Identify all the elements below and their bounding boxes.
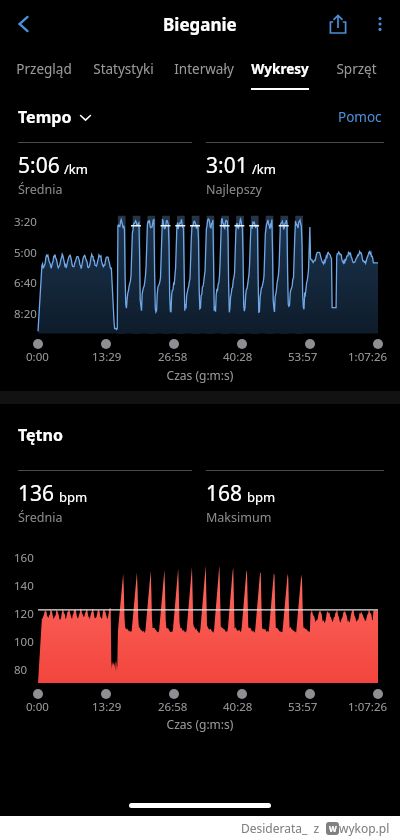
staticText: Tętno: [18, 424, 63, 446]
staticText: Desiderata_ z: [241, 820, 326, 836]
staticText: Przegląd: [16, 60, 72, 78]
staticText: /km: [64, 160, 88, 178]
staticText: 140: [14, 578, 34, 594]
staticText: 1:07:26: [348, 349, 388, 364]
staticText: Sprzęt: [336, 60, 377, 78]
staticText: Czas (g:m:s): [0, 716, 400, 732]
staticText: 6:40: [14, 275, 37, 291]
staticText: 40:28: [223, 699, 253, 714]
button[interactable]: Share: [316, 2, 360, 46]
staticText: 40:28: [223, 349, 253, 364]
button[interactable]: Tempo: [18, 106, 92, 128]
staticText: 160: [14, 550, 34, 566]
staticText: 136: [18, 479, 55, 508]
staticText: wykop.pl: [339, 820, 390, 836]
staticText: 5:00: [14, 245, 37, 261]
button[interactable]: Wykresy: [242, 48, 318, 90]
staticText: W: [329, 823, 337, 834]
staticText: bpm: [59, 488, 88, 506]
staticText: 168: [206, 479, 243, 508]
staticText: Średnia: [18, 181, 63, 198]
staticText: 26:58: [158, 699, 188, 714]
staticText: Maksimum: [206, 509, 272, 526]
staticText: 120: [14, 606, 34, 622]
staticText: Tempo: [18, 106, 72, 128]
button[interactable]: Back: [0, 0, 48, 48]
staticText: 5:06: [18, 151, 60, 180]
staticText: 13:29: [92, 699, 122, 714]
button[interactable]: Tętno: [18, 424, 63, 446]
staticText: Czas (g:m:s): [0, 367, 400, 383]
staticText: 13:29: [92, 349, 122, 364]
staticText: Najlepszy: [206, 181, 262, 198]
staticText: 0:00: [26, 349, 49, 364]
staticText: 0:00: [26, 699, 49, 714]
staticText: bpm: [247, 488, 276, 506]
staticText: 53:57: [288, 349, 318, 364]
staticText: Wykresy: [251, 60, 309, 78]
button[interactable]: Sprzęt: [318, 48, 394, 88]
staticText: Średnia: [18, 509, 63, 526]
button[interactable]: Przegląd: [6, 48, 81, 88]
staticText: Interwały: [174, 60, 234, 78]
button[interactable]: Interwały: [166, 48, 242, 88]
staticText: 80: [14, 662, 28, 678]
staticText: 100: [14, 634, 34, 650]
staticText: /km: [252, 160, 276, 178]
button[interactable]: Pomoc: [338, 108, 382, 126]
staticText: Bieganie: [163, 13, 237, 36]
staticText: Statystyki: [93, 60, 154, 78]
staticText: 1:07:26: [348, 699, 388, 714]
staticText: 3:20: [14, 214, 37, 230]
staticText: Pomoc: [338, 108, 382, 126]
staticText: 3:01: [206, 151, 248, 180]
button[interactable]: More options: [360, 4, 400, 44]
staticText: 26:58: [158, 349, 188, 364]
staticText: 8:20: [14, 306, 37, 322]
button[interactable]: Statystyki: [81, 48, 166, 88]
staticText: 53:57: [288, 699, 318, 714]
